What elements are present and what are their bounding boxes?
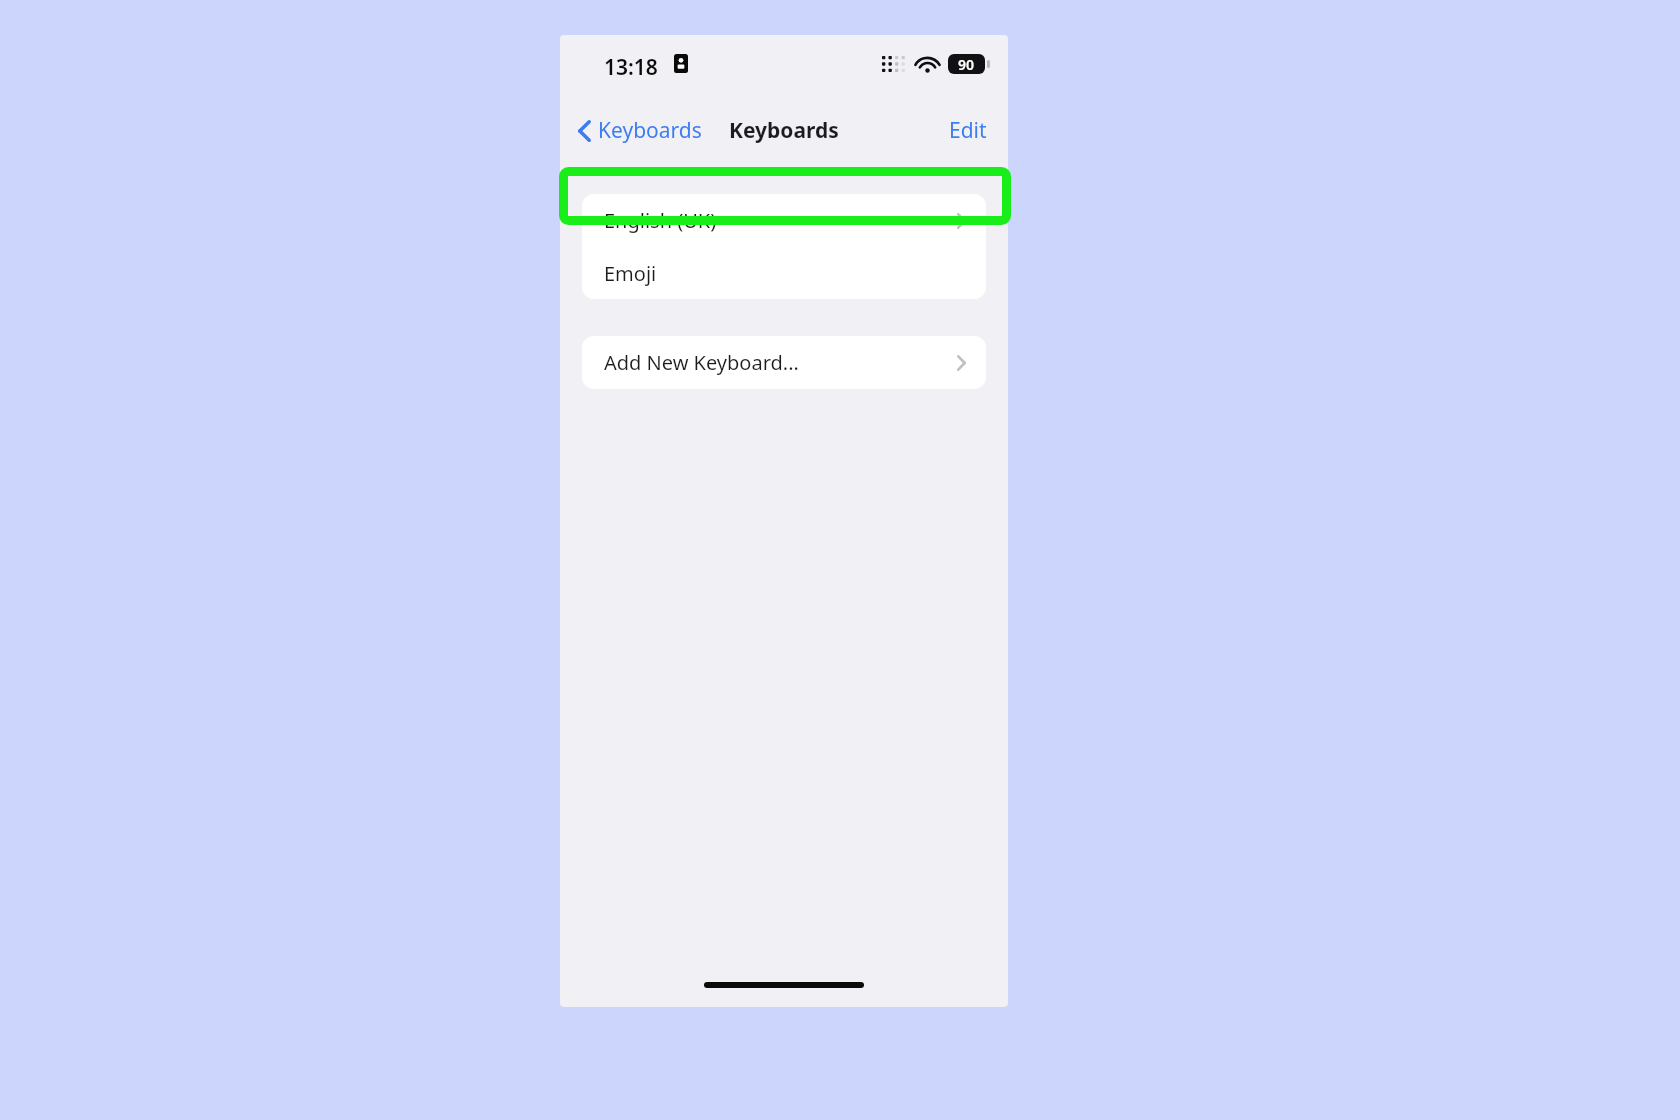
staticText: English (UK)	[604, 207, 717, 234]
staticText: 90	[958, 55, 975, 74]
staticText: Keyboards	[729, 116, 839, 145]
staticText: Add New Keyboard...	[604, 349, 799, 376]
button[interactable]: Edit	[941, 110, 995, 151]
button[interactable]: Keyboards	[570, 110, 710, 151]
staticText: Edit	[949, 116, 987, 145]
button[interactable]: Emoji	[582, 247, 986, 299]
staticText: Keyboards	[598, 116, 702, 145]
button[interactable]: Add New Keyboard...	[582, 336, 986, 389]
staticText: Emoji	[604, 260, 657, 287]
button[interactable]: English (UK)	[582, 194, 986, 247]
staticText: 13:18	[604, 53, 658, 82]
